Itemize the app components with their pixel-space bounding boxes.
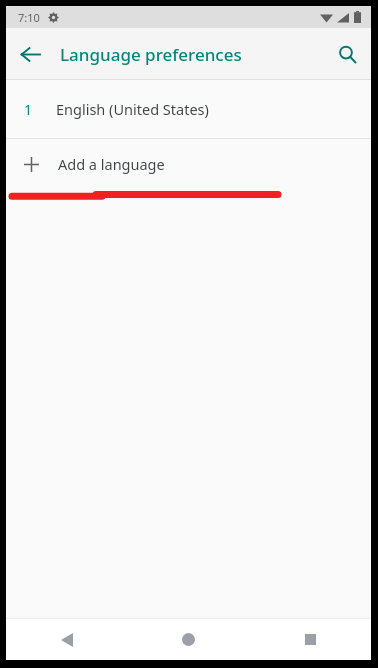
button[interactable]: Search	[323, 30, 371, 78]
staticText: Add a language	[58, 154, 165, 174]
button[interactable]: Recent apps	[249, 619, 371, 660]
button[interactable]: Add a language	[6, 139, 371, 189]
button[interactable]: 1	[6, 80, 371, 138]
button[interactable]: Home	[127, 619, 249, 660]
button[interactable]: Back	[6, 30, 54, 78]
staticText: Language preferences	[60, 43, 242, 66]
staticText: English (United States)	[56, 99, 209, 119]
staticText: 1	[24, 100, 33, 119]
button[interactable]: Back	[6, 619, 127, 660]
staticText: 7:10	[18, 10, 40, 25]
